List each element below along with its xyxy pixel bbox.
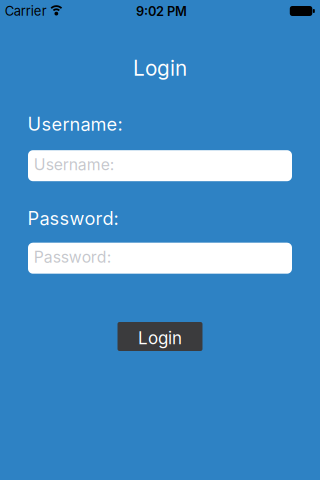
staticText: Password: (27, 207, 118, 229)
staticText: Password: (34, 247, 112, 266)
staticText: Login (138, 328, 182, 348)
staticText: Username: (34, 155, 115, 174)
textField[interactable]: Username: (28, 150, 292, 181)
button[interactable]: Login (117, 322, 202, 351)
staticText: 9:02 PM (136, 4, 187, 19)
staticText: Login (133, 56, 187, 81)
secureTextField[interactable]: Password: (28, 243, 292, 274)
staticText: Carrier (5, 3, 47, 19)
staticText: Username: (27, 113, 122, 135)
